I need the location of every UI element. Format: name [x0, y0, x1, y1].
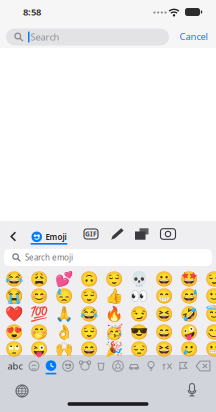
- button[interactable]: 😌: [76, 323, 101, 340]
- button[interactable]: 🙃: [76, 270, 101, 287]
- button[interactable]: 🤩: [176, 270, 201, 287]
- button[interactable]: Camera: [158, 224, 178, 244]
- button[interactable]: 😌: [201, 270, 216, 287]
- button[interactable]: 😇: [201, 305, 216, 322]
- button[interactable]: Cancel: [178, 29, 208, 43]
- button[interactable]: 😄: [76, 341, 101, 358]
- button[interactable]: 😎: [126, 323, 151, 340]
- button[interactable]: Objects: [143, 357, 159, 374]
- staticText: 😂: [80, 306, 98, 322]
- button[interactable]: 😔: [126, 341, 151, 358]
- button[interactable]: 👀: [126, 288, 151, 305]
- button[interactable]: 🤭: [26, 323, 51, 340]
- button[interactable]: GIF: [81, 224, 101, 244]
- button[interactable]: 😋: [201, 323, 216, 340]
- button[interactable]: 🥲: [176, 341, 201, 358]
- button[interactable]: 😌: [101, 270, 126, 287]
- button[interactable]: Recently used: [43, 358, 59, 375]
- button[interactable]: 😁: [151, 288, 176, 305]
- button[interactable]: 😩: [26, 270, 51, 287]
- staticText: 🙏: [55, 306, 73, 322]
- staticText: 🥲: [180, 341, 198, 358]
- button[interactable]: Symbols: [159, 357, 175, 374]
- staticText: 👀: [130, 288, 148, 305]
- staticText: 😇: [205, 306, 216, 322]
- staticText: Emoji: [45, 231, 66, 242]
- button[interactable]: 🤣: [176, 305, 201, 322]
- button[interactable]: Search: [6, 28, 169, 45]
- staticText: 🤪: [180, 323, 198, 340]
- button[interactable]: 😌: [76, 288, 101, 305]
- staticText: Cancel: [179, 30, 207, 43]
- staticText: 😍: [5, 323, 23, 340]
- staticText: 😂: [5, 270, 23, 287]
- staticText: 🎉: [105, 341, 123, 358]
- staticText: 😌: [105, 270, 123, 287]
- button[interactable]: 🎉: [101, 341, 126, 358]
- button[interactable]: Stickers: [132, 224, 152, 244]
- button[interactable]: Smileys and people: [60, 357, 76, 374]
- button[interactable]: 👍: [101, 288, 126, 305]
- button[interactable]: 🙄: [1, 341, 26, 358]
- staticText: 🤭: [30, 323, 48, 340]
- button[interactable]: Flags: [175, 357, 191, 374]
- button[interactable]: 😏: [126, 305, 151, 322]
- button[interactable]: Travel and places: [126, 357, 142, 374]
- button[interactable]: abc: [2, 358, 28, 374]
- staticText: 🤩: [180, 270, 198, 287]
- staticText: 😌: [80, 323, 98, 340]
- staticText: 💀: [130, 270, 148, 287]
- button[interactable]: 😓: [51, 288, 76, 305]
- button[interactable]: 😄: [151, 323, 176, 340]
- staticText: 😅: [180, 288, 198, 305]
- button[interactable]: 🙂: [201, 288, 216, 305]
- staticText: 😄: [155, 323, 173, 340]
- button[interactable]: 😜: [26, 341, 51, 358]
- button[interactable]: Back: [4, 225, 22, 247]
- button[interactable]: Frequently used: [26, 357, 42, 374]
- staticText: abc: [7, 360, 22, 372]
- button[interactable]: 💯: [26, 305, 51, 322]
- button[interactable]: Search emoji: [4, 249, 212, 266]
- staticText: Search emoji: [25, 252, 73, 263]
- button[interactable]: 😀: [151, 270, 176, 287]
- staticText: 😜: [30, 341, 48, 358]
- button[interactable]: 🔥: [101, 305, 126, 322]
- button[interactable]: 🙏: [51, 305, 76, 322]
- button[interactable]: 🙌: [51, 341, 76, 358]
- staticText: 💯: [30, 306, 48, 322]
- button[interactable]: 👌: [51, 323, 76, 340]
- button[interactable]: Animals and nature: [77, 357, 93, 374]
- button[interactable]: 💕: [51, 270, 76, 287]
- button[interactable]: 😂: [76, 305, 101, 322]
- button[interactable]: 💀: [126, 270, 151, 287]
- button[interactable]: 😂: [1, 270, 26, 287]
- staticText: 8:58: [23, 6, 41, 18]
- button[interactable]: 😍: [1, 323, 26, 340]
- button[interactable]: Food and drink: [93, 357, 109, 374]
- button[interactable]: Handwriting: [107, 224, 127, 244]
- staticText: 😓: [55, 288, 73, 305]
- button[interactable]: 😆: [151, 341, 176, 358]
- staticText: 😋: [205, 323, 216, 340]
- button[interactable]: 😬: [201, 341, 216, 358]
- button[interactable]: Activity: [110, 357, 126, 374]
- button[interactable]: Delete: [193, 357, 213, 374]
- button[interactable]: 😊: [26, 288, 51, 305]
- button[interactable]: Emoji: [28, 229, 70, 247]
- button[interactable]: 🥳: [101, 323, 126, 340]
- staticText: 🙃: [80, 270, 98, 287]
- button[interactable]: Dictation: [181, 379, 203, 401]
- staticText: 🙌: [55, 341, 73, 358]
- button[interactable]: 😭: [1, 288, 26, 305]
- staticText: Search: [30, 31, 59, 43]
- button[interactable]: 😅: [176, 288, 201, 305]
- button[interactable]: 😆: [151, 305, 176, 322]
- button[interactable]: Next keyboard: [11, 380, 33, 402]
- staticText: 😎: [130, 323, 148, 340]
- button[interactable]: 🤪: [176, 323, 201, 340]
- staticText: 🥳: [105, 323, 123, 340]
- button[interactable]: ❤️: [1, 305, 26, 322]
- staticText: 😩: [30, 270, 48, 287]
- staticText: GIF: [85, 230, 97, 238]
